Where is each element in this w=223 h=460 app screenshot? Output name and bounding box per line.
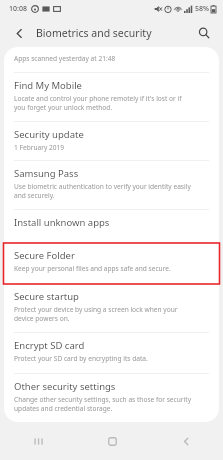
staticText: Protect your device by using a screen lo… xyxy=(14,305,178,323)
button[interactable]: Navigate up xyxy=(8,22,30,44)
button[interactable]: Back xyxy=(149,422,223,460)
button[interactable]: Encrypt SD card xyxy=(4,333,219,373)
button[interactable]: Search xyxy=(193,22,215,44)
staticText: Biometrics and security xyxy=(36,26,152,40)
staticText: Protect your SD card by encrypting its d… xyxy=(14,354,148,363)
staticText: Install unknown apps xyxy=(14,216,110,229)
staticText: Change other security settings, such as … xyxy=(14,395,191,413)
staticText: Samsung Pass xyxy=(14,167,79,180)
staticText: Security update xyxy=(14,128,84,141)
button[interactable]: Secure startup xyxy=(4,284,219,332)
button[interactable]: Other security settings xyxy=(4,374,219,422)
button[interactable]: Home xyxy=(75,422,149,460)
staticText: Find My Mobile xyxy=(14,79,82,92)
staticText: Use biometric authentication to verify y… xyxy=(14,182,191,200)
button[interactable]: Recent apps xyxy=(0,422,75,460)
button[interactable]: Find My Mobile xyxy=(4,73,219,121)
button[interactable]: Security update xyxy=(4,122,219,160)
staticText: Secure startup xyxy=(14,290,79,303)
staticText: Apps scanned yesterday at 21:48 xyxy=(14,54,116,63)
staticText: 58% xyxy=(195,4,209,14)
staticText: Other security settings xyxy=(14,380,116,393)
button[interactable]: Secure Folder xyxy=(4,243,219,283)
staticText: Secure Folder xyxy=(14,249,75,262)
staticText: Keep your personal files and apps safe a… xyxy=(14,264,171,273)
staticText: 10:08 xyxy=(9,4,27,14)
staticText: Locate and control your phone remotely i… xyxy=(14,94,182,112)
staticText: 1 February 2019 xyxy=(14,143,65,152)
button[interactable]: Install unknown apps xyxy=(4,210,219,242)
staticText: Encrypt SD card xyxy=(14,339,85,352)
button[interactable]: Samsung Pass xyxy=(4,161,219,209)
